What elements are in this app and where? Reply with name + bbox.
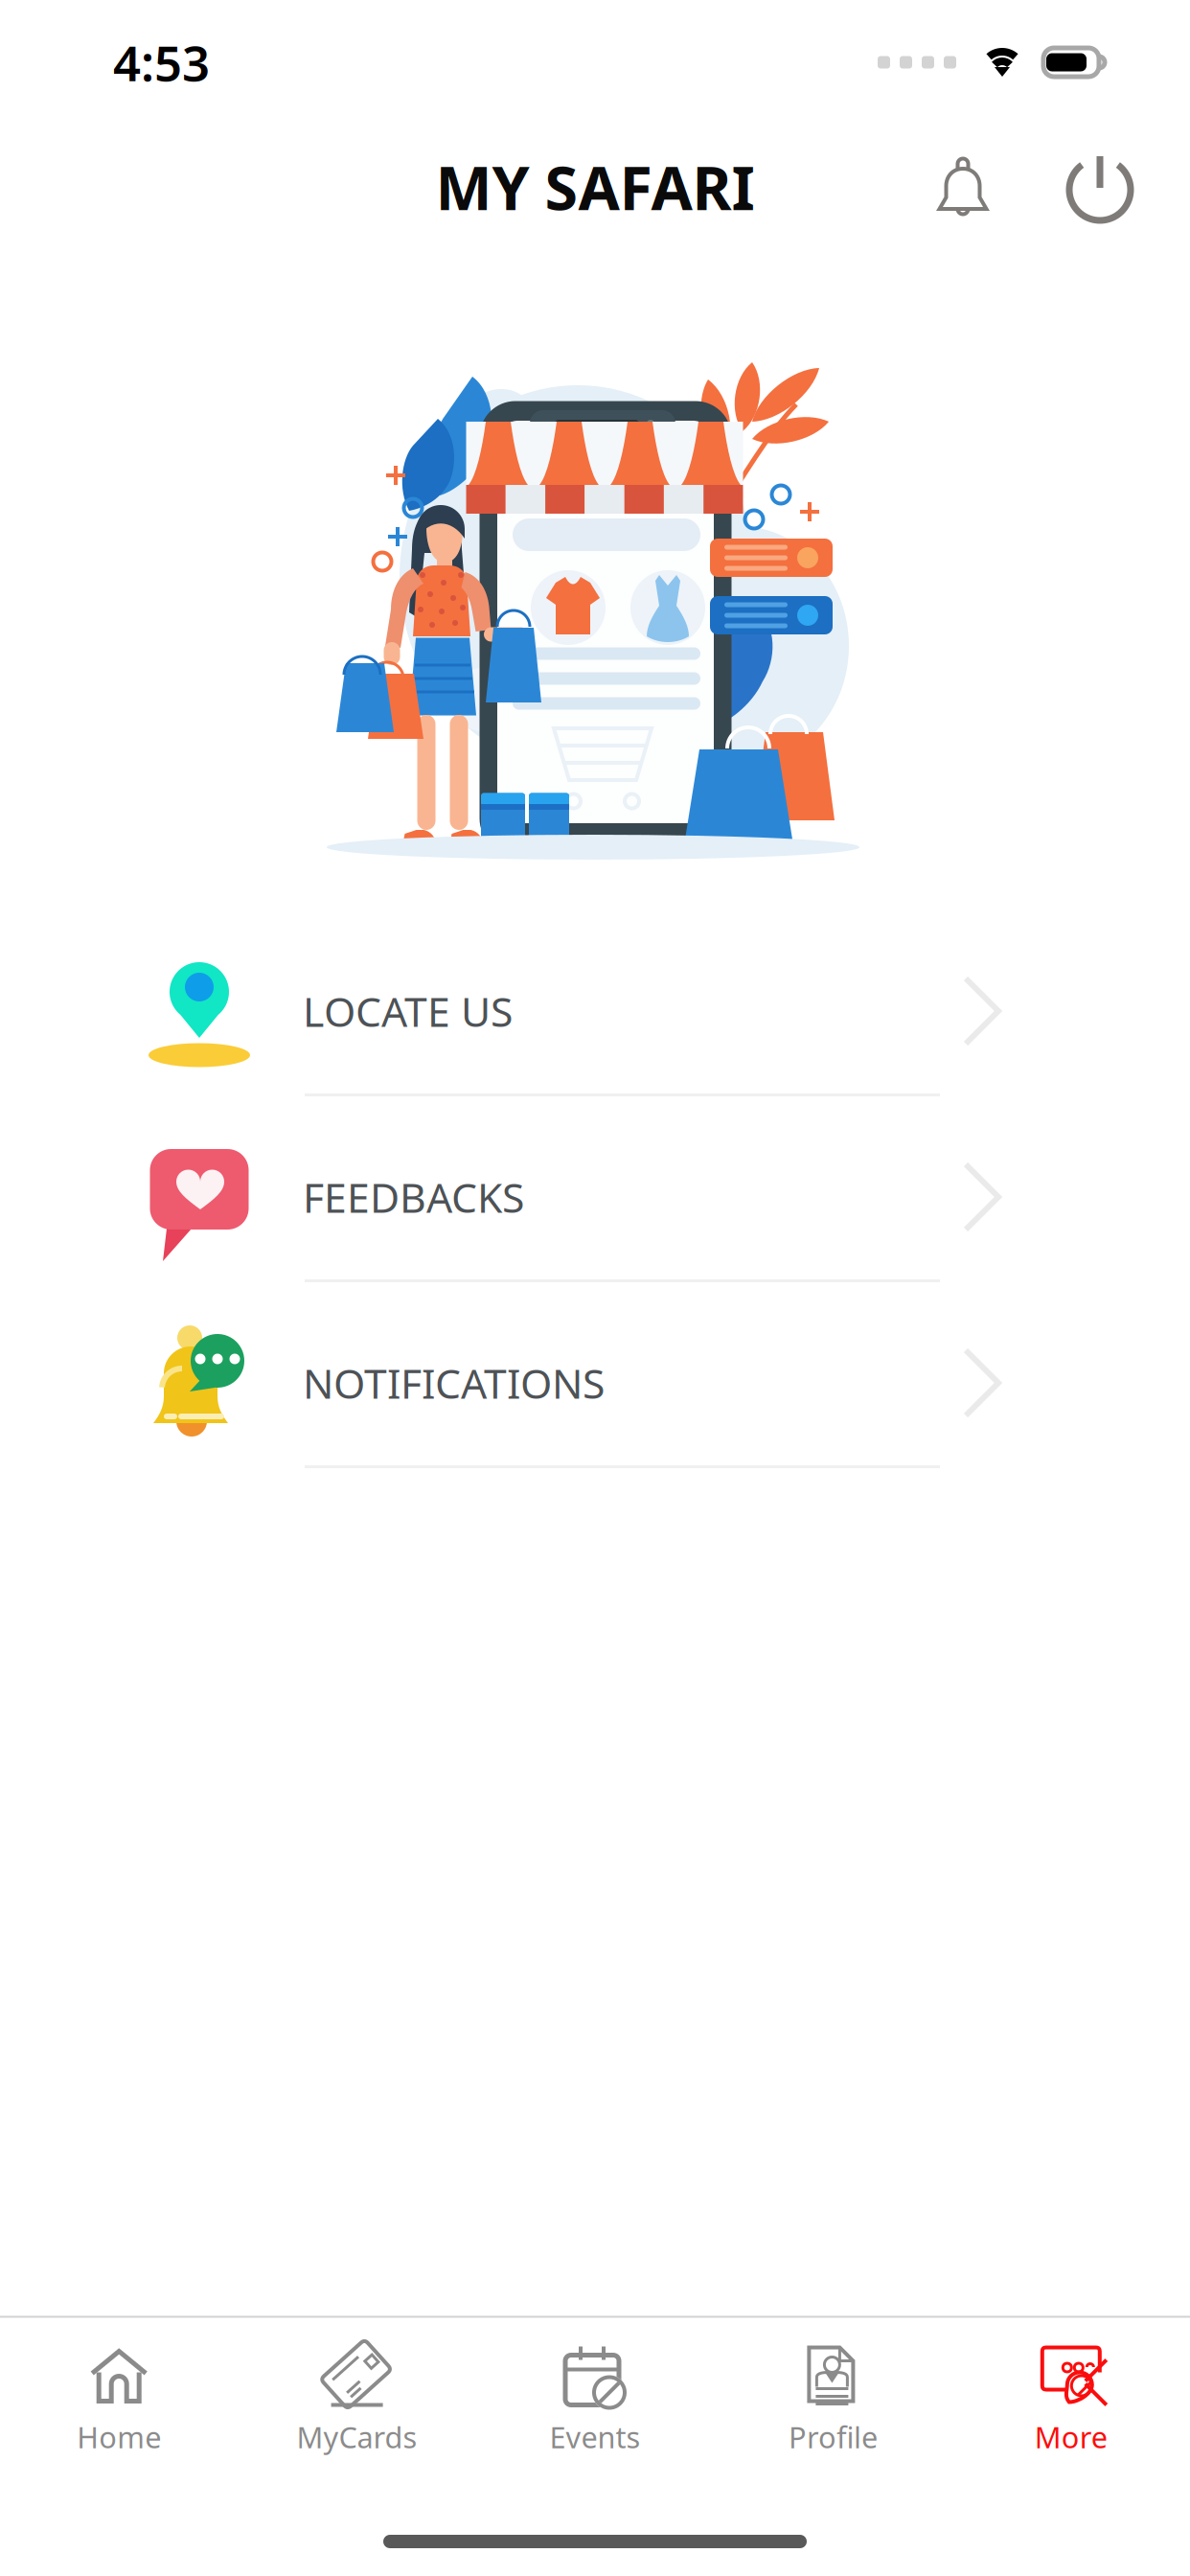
staticText: More xyxy=(1035,2417,1107,2456)
button[interactable]: NOTIFICATIONS xyxy=(0,1332,1190,1518)
staticText: NOTIFICATIONS xyxy=(303,1356,605,1410)
staticText: LOCATE US xyxy=(303,984,513,1038)
staticText: MY SAFARI xyxy=(435,147,755,227)
button[interactable]: Power xyxy=(1039,125,1163,249)
button[interactable]: More xyxy=(952,2318,1190,2506)
staticText: Home xyxy=(77,2417,161,2456)
button[interactable]: Events xyxy=(476,2318,714,2506)
staticText: FEEDBACKS xyxy=(303,1170,524,1224)
staticText: MyCards xyxy=(297,2417,417,2456)
button[interactable]: Notifications xyxy=(901,125,1025,249)
button[interactable]: MyCards xyxy=(238,2318,476,2506)
staticText: Profile xyxy=(788,2417,878,2456)
button[interactable]: Profile xyxy=(714,2318,952,2506)
staticText: 4:53 xyxy=(113,30,210,95)
staticText: Events xyxy=(549,2417,641,2456)
button[interactable]: LOCATE US xyxy=(0,960,1190,1146)
button[interactable]: FEEDBACKS xyxy=(0,1146,1190,1332)
button[interactable]: Home xyxy=(0,2318,238,2506)
